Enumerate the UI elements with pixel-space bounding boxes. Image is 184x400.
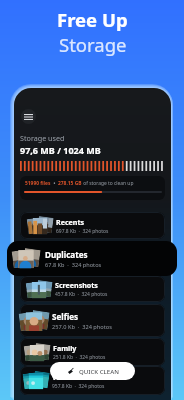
staticText: 697.8 Kb · 324 photos [56,228,109,235]
button[interactable] [20,366,165,395]
button[interactable] [20,212,165,239]
staticText: Storage used [20,133,65,143]
staticText: Free Up [57,7,128,32]
button[interactable] [20,276,165,302]
staticText: Screenshots [55,280,98,290]
button[interactable]: Menu [21,109,36,124]
button[interactable] [20,304,165,337]
staticText: 51990 files [25,180,51,187]
staticText: 67.8 Kb · 324 photos [45,261,102,269]
staticText: Duplicates [45,249,88,260]
staticText: 278.15 GB [58,180,82,187]
staticText: Family [53,343,77,353]
staticText: 257.0 Kb · 324 photos [52,323,112,331]
button[interactable]: QUICK CLEAN [50,362,135,380]
staticText: 97,6 MB / 1024 MB [20,144,101,156]
staticText: • [51,180,58,187]
staticText: 457.8 Kb · 324 photos [55,291,108,298]
staticText: 251.8 Kb · 324 photos [53,354,106,361]
staticText: QUICK CLEAN [79,367,119,375]
button[interactable] [20,338,165,366]
staticText: Selfies [52,311,79,322]
staticText: Recents [56,217,85,227]
staticText: of storage to clean up [82,180,134,187]
staticText: Vacation [52,372,83,382]
staticText: 957.8 Kb · 324 photos [52,383,105,390]
button[interactable]: Duplicates [7,241,177,276]
staticText: Storage [59,32,127,57]
